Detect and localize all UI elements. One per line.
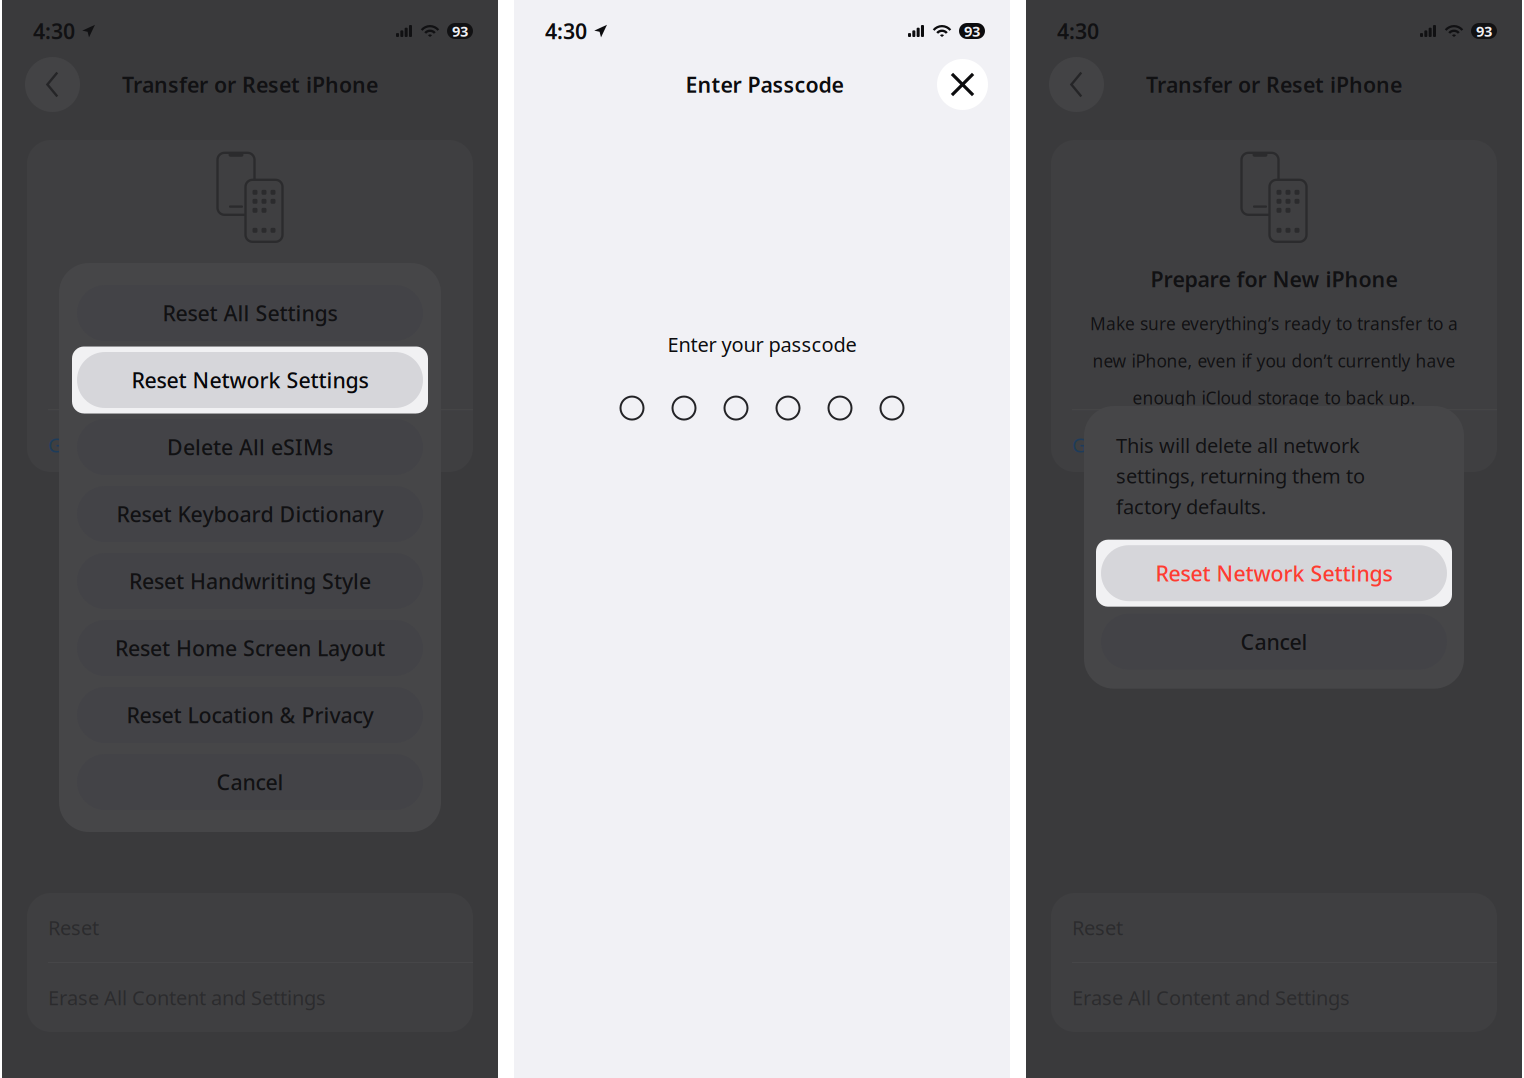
staticText: 93 — [964, 21, 980, 41]
staticText: Reset — [1072, 914, 1123, 941]
staticText: Reset Home Screen Layout — [115, 634, 385, 662]
button[interactable]: Back — [1049, 57, 1104, 112]
staticText: Reset Network Settings — [1155, 559, 1392, 587]
staticText: 93 — [452, 21, 468, 41]
staticText: Prepare for New iPhone — [1150, 265, 1397, 293]
staticText: Make sure everything’s ready to transfer… — [66, 312, 434, 335]
staticText: new iPhone, even if you don’t currently … — [1092, 349, 1455, 372]
button[interactable]: Reset Location & Privacy — [72, 687, 428, 743]
button[interactable]: Reset Network Settings — [1096, 540, 1452, 607]
staticText: Get Started — [1072, 431, 1177, 458]
staticText: Erase All Content and Settings — [48, 984, 326, 1011]
button[interactable]: Erase All Content and Settings — [1051, 963, 1497, 1032]
staticText: factory defaults. — [1116, 493, 1266, 520]
staticText: enough iCloud storage to back up. — [1132, 386, 1415, 409]
staticText: Enter Passcode — [685, 70, 843, 99]
button[interactable]: Erase All Content and Settings — [27, 963, 473, 1032]
staticText: Reset Network Settings — [131, 366, 368, 394]
button[interactable]: Reset Keyboard Dictionary — [72, 486, 428, 542]
staticText: Cancel — [216, 768, 283, 796]
button[interactable]: Cancel — [1096, 614, 1452, 670]
staticText: Delete All eSIMs — [167, 433, 333, 461]
staticText: Transfer or Reset iPhone — [122, 70, 378, 99]
staticText: 93 — [1476, 21, 1492, 41]
button[interactable]: Reset Handwriting Style — [72, 553, 428, 609]
staticText: Make sure everything’s ready to transfer… — [1090, 312, 1458, 335]
button[interactable]: Cancel — [72, 754, 428, 810]
staticText: 4:30 — [33, 17, 75, 45]
staticText: Transfer or Reset iPhone — [1146, 70, 1402, 99]
staticText: Enter your passcode — [667, 331, 856, 358]
button[interactable]: Reset All Settings — [72, 285, 428, 341]
button[interactable]: Back — [25, 57, 80, 112]
button[interactable]: Reset Home Screen Layout — [72, 620, 428, 676]
staticText: Reset Keyboard Dictionary — [116, 500, 383, 528]
staticText: 4:30 — [545, 17, 587, 45]
staticText: Get Started — [48, 431, 153, 458]
staticText: Reset Location & Privacy — [126, 701, 373, 729]
staticText: This will delete all network — [1116, 432, 1360, 459]
staticText: Reset Handwriting Style — [129, 567, 371, 595]
staticText: Erase All Content and Settings — [1072, 984, 1350, 1011]
staticText: Cancel — [1240, 627, 1307, 656]
staticText: new iPhone, even if you don’t currently … — [68, 349, 431, 372]
button[interactable]: Close — [937, 59, 988, 110]
staticText: 4:30 — [1057, 17, 1099, 45]
button[interactable]: Get Started — [1051, 410, 1497, 479]
staticText: Reset — [48, 914, 99, 941]
button[interactable]: Get Started — [27, 410, 473, 479]
button[interactable]: Reset Network Settings — [72, 352, 428, 408]
staticText: enough iCloud storage to back up. — [108, 386, 391, 409]
staticText: Reset All Settings — [162, 299, 337, 327]
button[interactable]: Delete All eSIMs — [72, 419, 428, 475]
staticText: settings, returning them to — [1116, 463, 1365, 489]
